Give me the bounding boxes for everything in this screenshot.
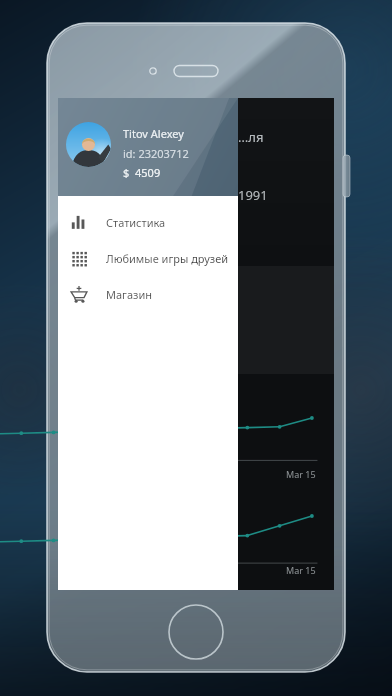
staticText: $ 4509	[123, 165, 161, 180]
staticText: Titov Alexey	[123, 126, 184, 141]
staticText: id: 23203712	[123, 146, 189, 161]
staticText: Mar 15	[286, 468, 316, 480]
staticText: 1991	[238, 186, 268, 204]
staticText: Любимые игры друзей	[106, 251, 229, 266]
button[interactable]: Статистика	[58, 204, 238, 240]
button[interactable]: Titov Alexey	[58, 98, 238, 196]
staticText: Mar 15	[286, 564, 316, 576]
staticText: Магазин	[106, 287, 152, 302]
staticText: …ля	[238, 128, 264, 146]
button[interactable]: Магазин	[58, 276, 238, 312]
staticText: Статистика	[106, 215, 166, 230]
button[interactable]: Любимые игры друзей	[58, 240, 238, 276]
